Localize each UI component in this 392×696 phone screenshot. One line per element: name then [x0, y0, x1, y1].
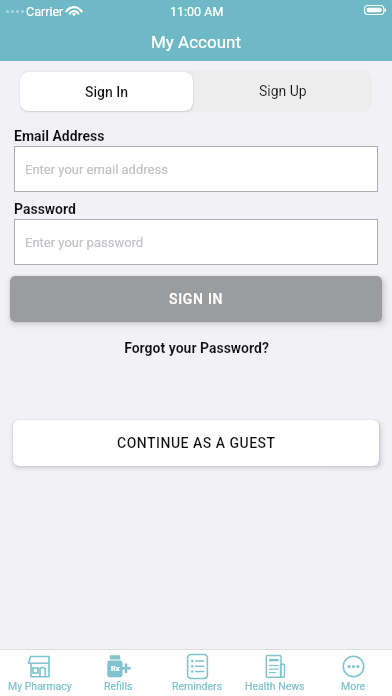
staticText: My Pharmacy — [8, 680, 72, 692]
button[interactable]: Enter your email address — [14, 146, 378, 192]
button[interactable]: Enter your password — [14, 219, 378, 265]
button[interactable]: CONTINUE AS A GUEST — [13, 420, 379, 466]
staticText: Email Address — [14, 128, 105, 144]
button[interactable]: More — [314, 650, 392, 696]
button[interactable]: Reminders — [158, 650, 236, 696]
button[interactable]: Refills — [79, 650, 158, 696]
button[interactable]: Health News — [236, 650, 314, 696]
button[interactable]: SIGN IN — [10, 276, 382, 322]
staticText: Sign Up — [259, 83, 307, 99]
staticText: Sign In — [85, 84, 129, 100]
staticText: Health News — [245, 680, 305, 692]
staticText: Enter your email address — [25, 162, 168, 177]
staticText: Forgot your Password? — [124, 340, 269, 356]
staticText: My Account — [151, 32, 242, 52]
button[interactable]: Sign Up — [193, 70, 372, 112]
staticText: Password — [14, 201, 76, 217]
button[interactable]: Forgot your Password? — [0, 338, 392, 358]
button[interactable]: Sign In — [20, 72, 193, 111]
button[interactable]: My Pharmacy — [0, 650, 79, 696]
staticText: More — [341, 680, 366, 692]
staticText: CONTINUE AS A GUEST — [117, 435, 276, 451]
staticText: SIGN IN — [169, 291, 224, 307]
staticText: Rx — [111, 664, 120, 673]
staticText: Refills — [104, 680, 133, 692]
staticText: 11:00 AM — [170, 4, 224, 19]
staticText: Carrier — [26, 4, 64, 19]
staticText: Reminders — [172, 680, 223, 692]
staticText: Enter your password — [25, 235, 144, 250]
